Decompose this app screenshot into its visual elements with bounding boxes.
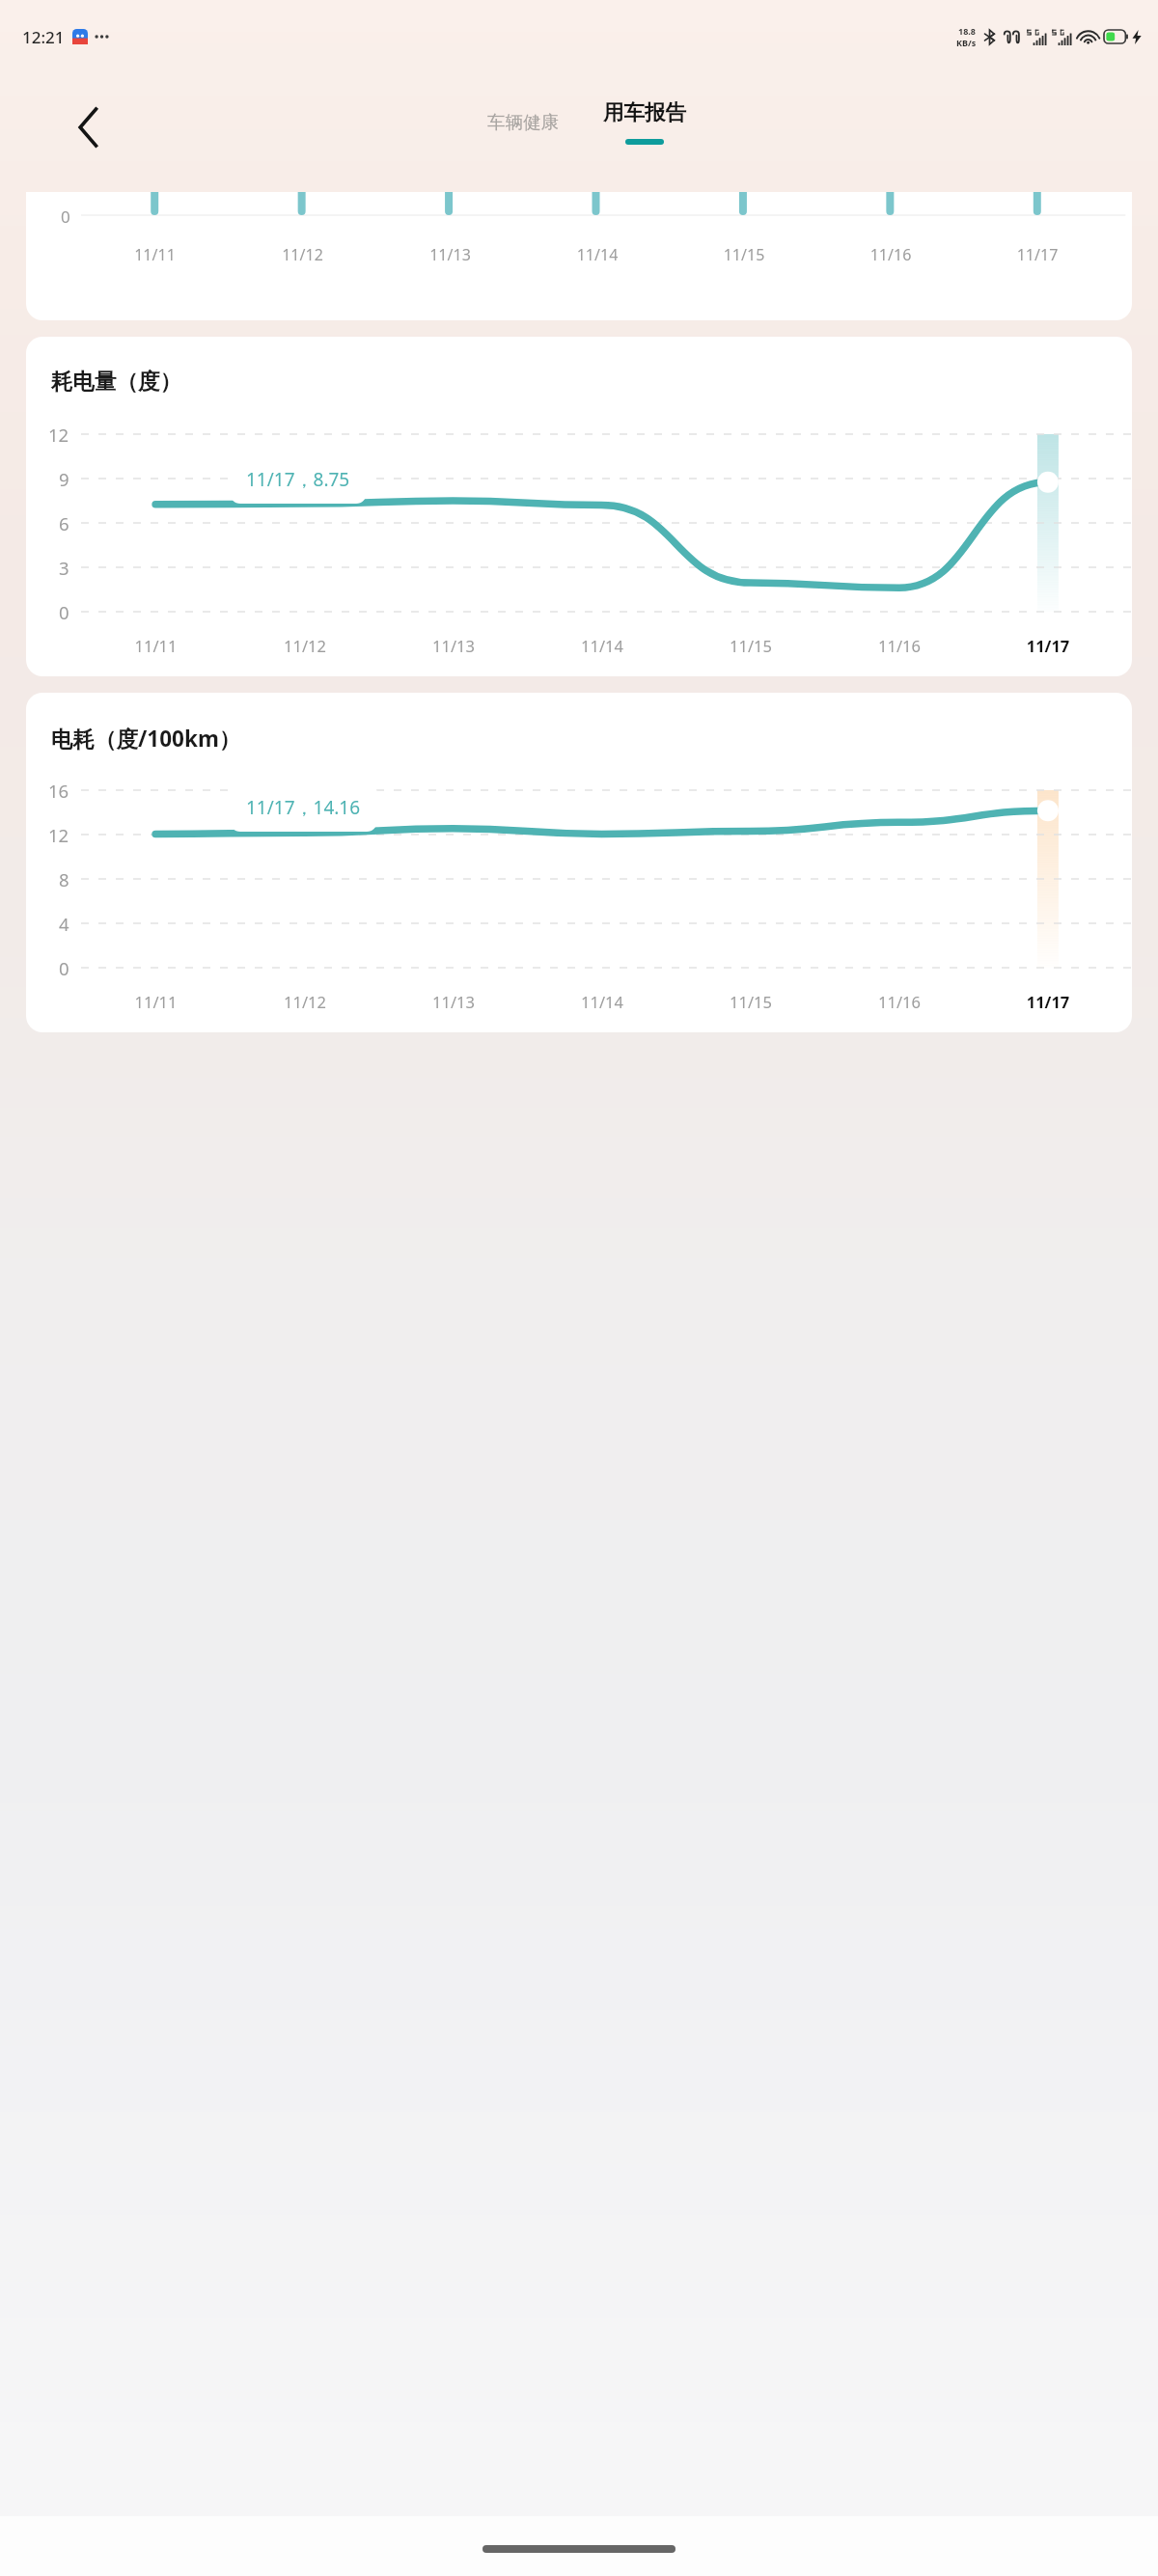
staticText: 18.8 [958, 25, 976, 37]
staticText: 11/11 [81, 991, 231, 1012]
staticText: 11/15 [676, 991, 825, 1012]
staticText: 0 [61, 206, 70, 228]
button[interactable]: 耗电量（度） [26, 337, 1132, 676]
staticText: 电耗（度/100km） [51, 724, 241, 754]
staticText: 3 [59, 556, 69, 579]
button[interactable]: 车辆健康 [476, 103, 570, 141]
staticText: 11/16 [825, 635, 974, 656]
staticText: 11/13 [379, 991, 528, 1012]
staticText: KB/s [956, 37, 977, 48]
staticText: 11/16 [817, 244, 964, 265]
staticText: 11/17 [974, 635, 1122, 656]
staticText: 9 [59, 467, 69, 490]
staticText: 用车报告 [603, 99, 686, 125]
staticText: 11/15 [671, 244, 817, 265]
staticText: 16 [48, 779, 69, 802]
staticText: 11/14 [528, 991, 676, 1012]
staticText: 12 [48, 423, 69, 446]
staticText: 0 [59, 956, 69, 979]
staticText: 11/14 [528, 635, 676, 656]
button[interactable]: 返回 [56, 96, 120, 159]
staticText: 11/12 [231, 635, 379, 656]
staticText: 11/16 [825, 991, 974, 1012]
staticText: 11/17 [974, 991, 1122, 1012]
staticText: 6 [59, 511, 69, 534]
staticText: 11/17 [964, 244, 1111, 265]
staticText: 11/13 [376, 244, 524, 265]
staticText: 8 [59, 867, 69, 891]
staticText: 12 [48, 823, 69, 846]
staticText: 车辆健康 [487, 111, 559, 133]
staticText: 11/15 [676, 635, 825, 656]
staticText: 11/17，8.75 [246, 467, 350, 492]
staticText: 0 [59, 600, 69, 623]
staticText: 11/12 [231, 991, 379, 1012]
staticText: 4 [59, 912, 69, 935]
staticText: 11/14 [524, 244, 671, 265]
staticText: 11/17，14.16 [246, 795, 361, 820]
staticText: 11/11 [81, 244, 229, 265]
staticText: 11/11 [81, 635, 231, 656]
staticText: 12:21 [22, 26, 65, 48]
button[interactable]: 0 [26, 192, 1132, 320]
button[interactable]: 用车报告 [592, 99, 698, 145]
staticText: 耗电量（度） [51, 368, 181, 395]
staticText: 11/12 [229, 244, 376, 265]
staticText: 11/13 [379, 635, 528, 656]
button[interactable]: 电耗（度/100km） [26, 693, 1132, 1032]
